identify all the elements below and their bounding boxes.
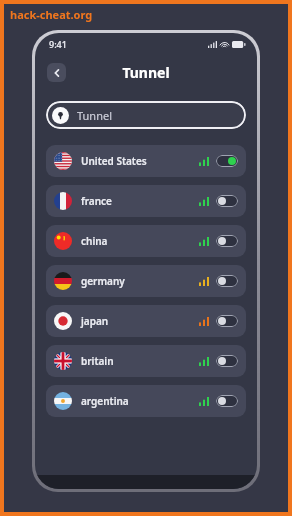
- staticText: argentina: [81, 394, 129, 408]
- button[interactable]: argentina: [46, 385, 246, 417]
- button[interactable]: Enable japan: [216, 315, 238, 327]
- button[interactable]: china: [46, 225, 246, 257]
- staticText: hack-cheat.org: [10, 7, 93, 22]
- button[interactable]: Enable germany: [216, 275, 238, 287]
- staticText: United States: [81, 154, 147, 168]
- button[interactable]: Enable france: [216, 195, 238, 207]
- button[interactable]: britain: [46, 345, 246, 377]
- staticText: Tunnel: [122, 63, 170, 82]
- button[interactable]: Back: [47, 63, 66, 82]
- staticText: germany: [81, 274, 125, 288]
- button[interactable]: Enable china: [216, 235, 238, 247]
- button[interactable]: United States: [46, 145, 246, 177]
- button[interactable]: Disable United States: [216, 155, 238, 167]
- staticText: britain: [81, 354, 114, 368]
- staticText: Tunnel: [77, 108, 113, 123]
- button[interactable]: france: [46, 185, 246, 217]
- staticText: france: [81, 194, 112, 208]
- staticText: 9:41: [49, 38, 67, 50]
- button[interactable]: germany: [46, 265, 246, 297]
- button[interactable]: japan: [46, 305, 246, 337]
- button[interactable]: Tunnel: [46, 101, 246, 129]
- button[interactable]: Enable britain: [216, 355, 238, 367]
- staticText: japan: [81, 314, 109, 328]
- staticText: china: [81, 234, 108, 248]
- button[interactable]: Enable argentina: [216, 395, 238, 407]
